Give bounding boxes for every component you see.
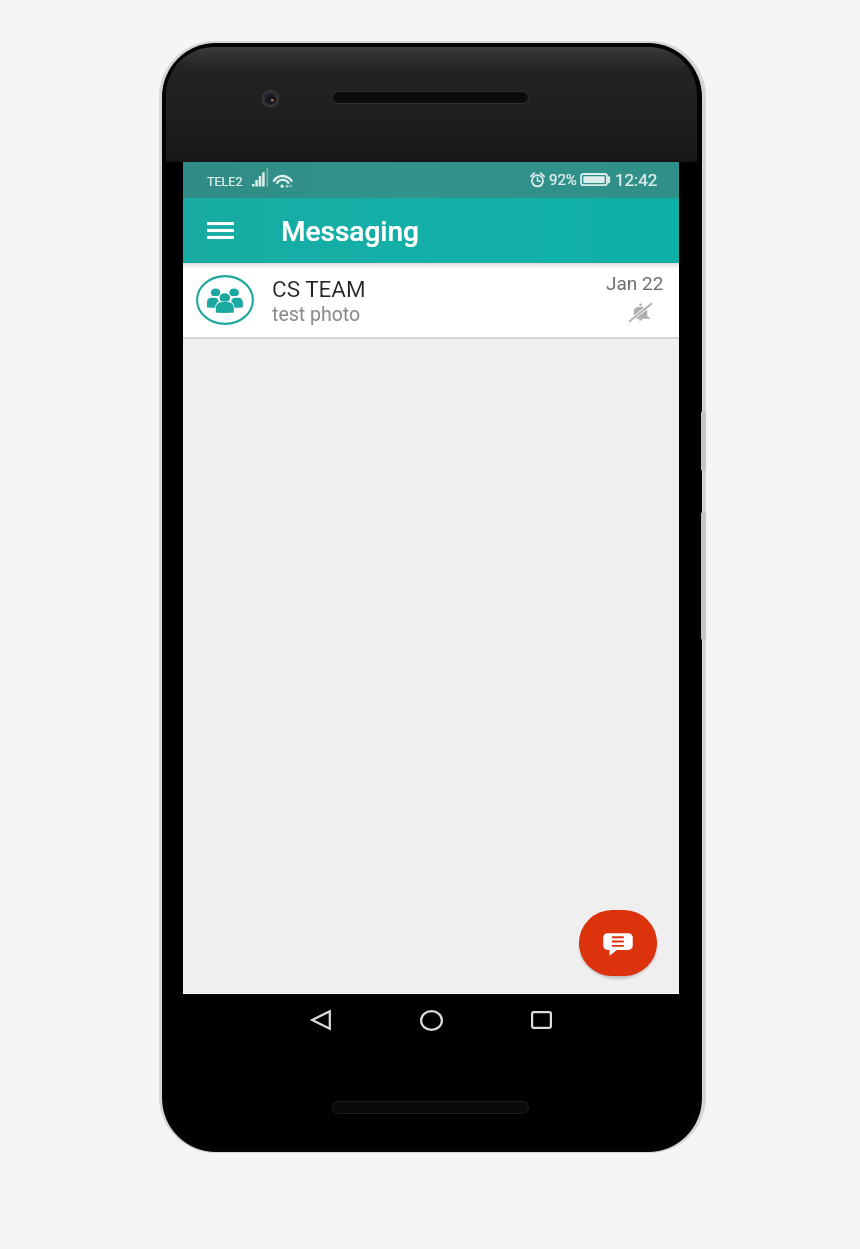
staticText: 12:42	[615, 170, 658, 190]
button[interactable]: Back	[295, 994, 347, 1046]
button[interactable]: Start new conversation	[579, 910, 657, 976]
button[interactable]: CS TEAM	[183, 263, 679, 337]
button[interactable]: Recent apps	[515, 994, 567, 1046]
staticText: test photo	[272, 303, 361, 326]
staticText: Jan 22	[606, 272, 664, 294]
staticText: Messaging	[281, 215, 419, 248]
button[interactable]: Home	[405, 994, 457, 1046]
staticText: CS TEAM	[272, 276, 366, 302]
staticText: TELE2	[207, 174, 243, 189]
button[interactable]: Open navigation drawer	[195, 198, 245, 263]
staticText: 92%	[549, 171, 577, 189]
